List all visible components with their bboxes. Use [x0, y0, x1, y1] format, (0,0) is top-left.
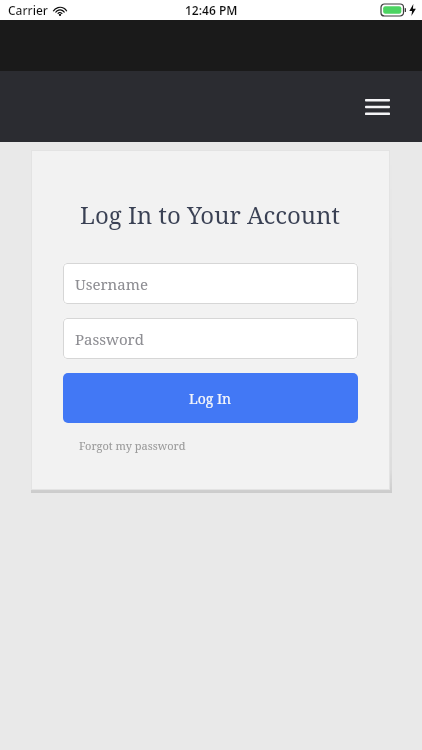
staticText: Password — [75, 329, 144, 349]
button[interactable]: Log In — [63, 373, 358, 423]
staticText: Forgot my password — [79, 438, 186, 453]
staticText: Log In to Your Account — [80, 198, 341, 231]
button[interactable]: Password — [63, 318, 358, 359]
staticText: Username — [75, 274, 148, 294]
button[interactable]: Username — [63, 263, 358, 304]
staticText: 12:46 PM — [185, 2, 238, 18]
button[interactable]: Forgot my password — [79, 438, 186, 453]
button[interactable]: Open menu — [360, 92, 394, 122]
staticText: Log In — [189, 389, 232, 408]
staticText: Carrier — [8, 2, 48, 18]
